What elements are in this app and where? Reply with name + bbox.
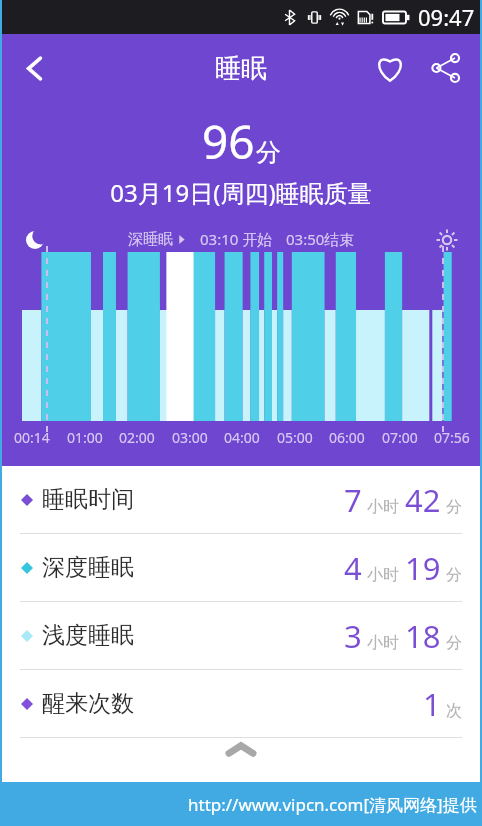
staticText: 小时 (367, 497, 399, 517)
staticText: 03:10 开始 (200, 229, 273, 249)
staticText: 03:50结束 (286, 229, 355, 249)
staticText: 01:00 (67, 428, 103, 447)
staticText: 睡眠时间 (42, 485, 134, 514)
staticText: 4 (344, 547, 362, 589)
staticText: 小时 (367, 633, 399, 653)
staticText: 19 (405, 547, 441, 589)
staticText: 深度睡眠 (42, 553, 134, 582)
staticText: 浅度睡眠 (42, 621, 134, 650)
staticText: 03:00 (172, 428, 208, 447)
staticText: 02:00 (119, 428, 155, 447)
staticText: 分 (446, 633, 462, 653)
staticText: 03月19日(周四)睡眠质量 (0, 176, 482, 209)
staticText: 分 (446, 565, 462, 585)
staticText: 1 (423, 683, 441, 725)
staticText: 09:47 (418, 2, 475, 32)
staticText: 分 (446, 497, 462, 517)
staticText: 18 (405, 615, 441, 657)
staticText: 00:14 (14, 428, 50, 447)
staticText: 07:00 (382, 428, 418, 447)
staticText: 06:00 (329, 428, 365, 447)
staticText: 42 (405, 479, 441, 521)
staticText: 96 (202, 110, 255, 173)
button[interactable]: Favorite (362, 40, 418, 96)
staticText: 次 (446, 701, 462, 721)
staticText: 深睡眠 (128, 230, 173, 249)
button[interactable]: 浅度睡眠 (0, 602, 482, 669)
staticText: 醒来次数 (42, 689, 134, 718)
staticText: 07:56 (434, 428, 470, 447)
staticText: 04:00 (224, 428, 260, 447)
staticText: http://www.vipcn.com[清风网络]提供 (188, 793, 477, 816)
staticText: 睡眠 (215, 52, 267, 85)
staticText: 3 (344, 615, 362, 657)
staticText: 小时 (367, 565, 399, 585)
staticText: 分 (256, 137, 281, 168)
staticText: 7 (344, 479, 362, 521)
button[interactable]: Back (8, 42, 60, 94)
button[interactable]: 醒来次数 (0, 670, 482, 737)
button[interactable]: Share (418, 40, 474, 96)
button[interactable]: 深度睡眠 (0, 534, 482, 601)
staticText: 05:00 (277, 428, 313, 447)
button[interactable]: 睡眠时间 (0, 466, 482, 533)
